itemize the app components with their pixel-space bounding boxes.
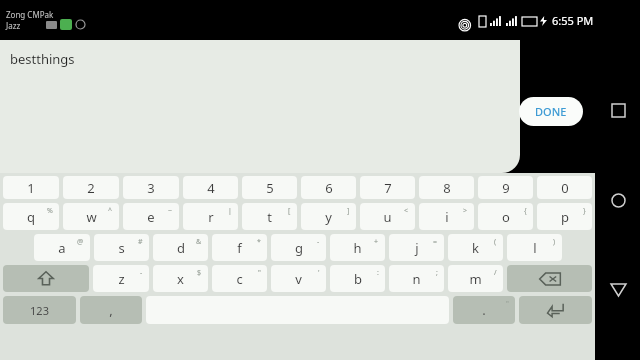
button[interactable]: 123	[3, 296, 76, 324]
staticText: }	[583, 206, 586, 216]
button[interactable]: 7	[360, 176, 415, 199]
button[interactable]: DONE	[519, 97, 583, 126]
staticText: f	[237, 239, 242, 257]
button[interactable]: z	[93, 265, 149, 292]
button[interactable]: d	[153, 234, 208, 261]
staticText: &	[196, 237, 202, 247]
button[interactable]: e	[123, 203, 179, 230]
staticText: g	[295, 239, 303, 257]
button[interactable]: y	[301, 203, 356, 230]
staticText: [	[288, 206, 291, 216]
button[interactable]: s	[94, 234, 149, 261]
button[interactable]: h	[330, 234, 385, 261]
staticText: =	[433, 237, 438, 247]
button[interactable]: ,	[80, 296, 142, 324]
button[interactable]: g	[271, 234, 326, 261]
button[interactable]: Backspace	[507, 265, 592, 292]
staticText: k	[472, 239, 479, 257]
button[interactable]: 6	[301, 176, 356, 199]
button[interactable]: w	[63, 203, 119, 230]
staticText: t	[267, 208, 272, 226]
staticText: +	[374, 237, 379, 247]
button[interactable]: a	[34, 234, 90, 261]
button[interactable]: Enter	[519, 296, 592, 324]
staticText: ^	[108, 206, 113, 216]
button[interactable]: t	[242, 203, 297, 230]
button[interactable]: Back	[598, 270, 638, 310]
button[interactable]: 0	[537, 176, 592, 199]
staticText: :	[377, 268, 379, 278]
staticText: j	[415, 239, 419, 257]
button[interactable]: Recents	[598, 90, 638, 130]
staticText: 3	[147, 179, 155, 197]
button[interactable]: Home	[598, 180, 638, 220]
button[interactable]: r	[183, 203, 238, 230]
staticText: Zong CMPak	[6, 9, 54, 20]
staticText: 123	[30, 303, 49, 318]
staticText: 1	[27, 179, 35, 197]
staticText: %	[47, 206, 53, 216]
staticText: h	[353, 239, 362, 257]
staticText: ;	[436, 268, 438, 278]
button[interactable]: u	[360, 203, 415, 230]
staticText: "	[258, 268, 261, 278]
staticText: 5	[266, 179, 274, 197]
button[interactable]: l	[507, 234, 562, 261]
staticText: .	[482, 301, 486, 319]
button[interactable]: j	[389, 234, 444, 261]
button[interactable]: b	[330, 265, 385, 292]
staticText: bestthings	[10, 50, 75, 68]
staticText: $	[197, 268, 202, 278]
button[interactable]: 5	[242, 176, 297, 199]
button[interactable]: v	[271, 265, 326, 292]
button[interactable]: i	[419, 203, 474, 230]
button[interactable]: 3	[123, 176, 179, 199]
staticText: 9	[502, 179, 510, 197]
staticText: 6:55 PM	[552, 13, 594, 28]
staticText: 2	[87, 179, 95, 197]
staticText: a	[58, 239, 66, 257]
button[interactable]: .	[453, 296, 515, 324]
staticText: DONE	[535, 104, 567, 119]
staticText: *	[257, 237, 261, 247]
staticText: Jazz	[6, 20, 21, 31]
button[interactable]: k	[448, 234, 503, 261]
staticText: v	[295, 270, 302, 288]
button[interactable]: 8	[419, 176, 474, 199]
staticText: "	[506, 299, 509, 309]
button[interactable]: f	[212, 234, 267, 261]
staticText: z	[118, 270, 125, 288]
staticText: m	[469, 270, 482, 288]
staticText: w	[86, 208, 97, 226]
staticText: 7	[384, 179, 392, 197]
button[interactable]: o	[478, 203, 533, 230]
button[interactable]: q	[3, 203, 59, 230]
button[interactable]: Shift	[3, 265, 89, 292]
staticText: x	[177, 270, 184, 288]
staticText: 8	[443, 179, 451, 197]
staticText: |	[228, 206, 232, 216]
staticText: e	[147, 208, 155, 226]
staticText: i	[445, 208, 449, 226]
button[interactable]: n	[389, 265, 444, 292]
button[interactable]: 9	[478, 176, 533, 199]
staticText: -	[140, 268, 143, 278]
button[interactable]: 2	[63, 176, 119, 199]
staticText: 6	[325, 179, 333, 197]
staticText: b	[354, 270, 362, 288]
staticText: u	[383, 208, 392, 226]
staticText: l	[533, 239, 537, 257]
button[interactable]: c	[212, 265, 267, 292]
staticText: 4	[207, 179, 215, 197]
staticText: >	[463, 206, 468, 216]
button[interactable]: 1	[3, 176, 59, 199]
staticText: q	[27, 208, 35, 226]
button[interactable]: m	[448, 265, 503, 292]
button[interactable]: p	[537, 203, 592, 230]
button[interactable]: x	[153, 265, 208, 292]
button[interactable]: 4	[183, 176, 238, 199]
staticText: y	[325, 208, 332, 226]
staticText: {	[524, 206, 527, 216]
